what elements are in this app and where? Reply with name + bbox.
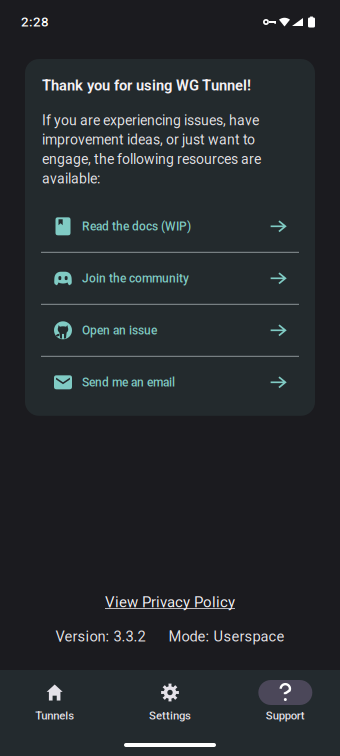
staticText: If you are experiencing issues, have imp… [42,112,261,187]
staticText: Thank you for using WG Tunnel! [42,77,251,94]
staticText: Settings [149,709,191,722]
button[interactable]: Settings [115,680,225,722]
button[interactable]: Send me an email [41,357,299,408]
staticText: Send me an email [82,375,175,389]
staticText: Open an issue [82,323,157,337]
button[interactable]: Support [231,680,340,722]
button[interactable]: Open an issue [41,305,299,356]
staticText: View Privacy Policy [105,593,235,611]
staticText: Mode: Userspace [168,628,284,645]
button[interactable]: Read the docs (WIP) [41,201,299,252]
staticText: Read the docs (WIP) [82,219,191,233]
staticText: Version: 3.3.2 [55,628,145,645]
staticText: Support [266,709,305,722]
button[interactable]: Join the community [41,253,299,304]
button[interactable]: View Privacy Policy [105,593,235,611]
staticText: Tunnels [35,709,74,722]
staticText: Join the community [82,271,189,285]
button[interactable]: Tunnels [0,680,109,722]
staticText: 2:28 [21,14,49,30]
